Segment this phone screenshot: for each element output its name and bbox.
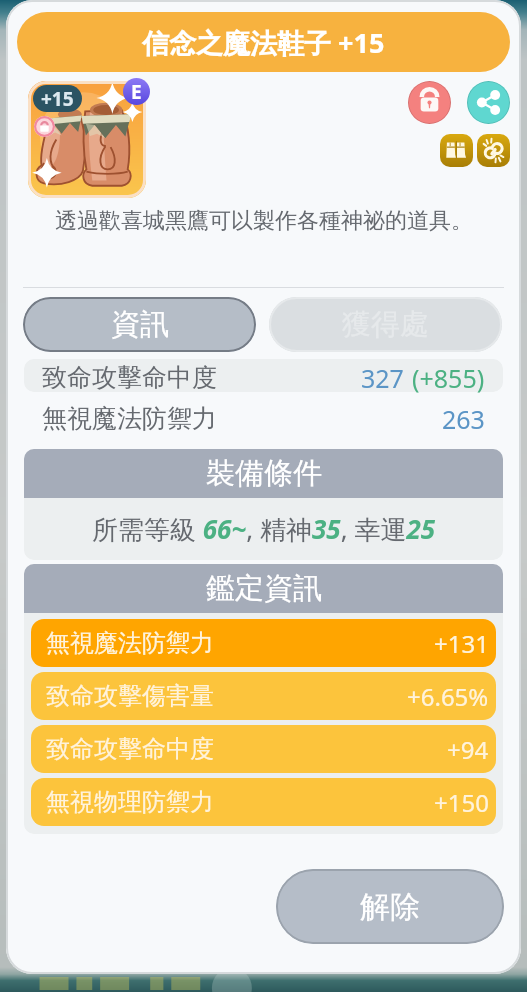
staticText: +94: [447, 733, 489, 766]
staticText: 透過歡喜城黑鷹可以製作各種神祕的道具。: [55, 207, 473, 235]
staticText: (+855): [412, 361, 485, 394]
staticText: 鑑定資訊: [206, 570, 322, 607]
staticText: +6.65%: [407, 680, 489, 713]
button[interactable]: 無視魔法防禦力: [24, 396, 503, 441]
staticText: 信念之魔法鞋子 +15: [142, 24, 385, 61]
staticText: +131: [434, 627, 489, 660]
button[interactable]: 無視物理防禦力: [31, 778, 496, 826]
staticText: +15: [41, 86, 74, 112]
staticText: 無視魔法防禦力: [46, 628, 214, 658]
staticText: 致命攻擊傷害量: [46, 681, 214, 711]
staticText: E: [131, 79, 142, 105]
staticText: 裝備條件: [206, 455, 322, 492]
staticText: 無視魔法防禦力: [42, 403, 217, 434]
button[interactable]: Item set: [440, 134, 473, 167]
staticText: 263: [442, 402, 485, 436]
button[interactable]: Lock: [408, 81, 451, 124]
staticText: 致命攻擊命中度: [42, 362, 217, 393]
button[interactable]: Linked item: [477, 134, 510, 167]
button[interactable]: 致命攻擊傷害量: [31, 672, 496, 720]
button[interactable]: 解除: [276, 869, 504, 944]
button[interactable]: 獲得處: [269, 297, 502, 352]
button[interactable]: 致命攻擊命中度: [31, 725, 496, 773]
staticText: +150: [434, 786, 489, 819]
staticText: 無視物理防禦力: [46, 787, 214, 817]
button[interactable]: 致命攻擊命中度: [24, 359, 503, 392]
staticText: 327: [361, 361, 404, 394]
button[interactable]: Share: [467, 81, 510, 124]
button[interactable]: 資訊: [23, 297, 256, 352]
staticText: 所需等級 66~, 精神35, 幸運25: [92, 511, 436, 547]
staticText: 資訊: [111, 306, 169, 343]
staticText: 致命攻擊命中度: [46, 734, 214, 764]
staticText: 獲得處: [342, 306, 429, 343]
staticText: 解除: [360, 888, 420, 926]
button[interactable]: 無視魔法防禦力: [31, 619, 496, 667]
